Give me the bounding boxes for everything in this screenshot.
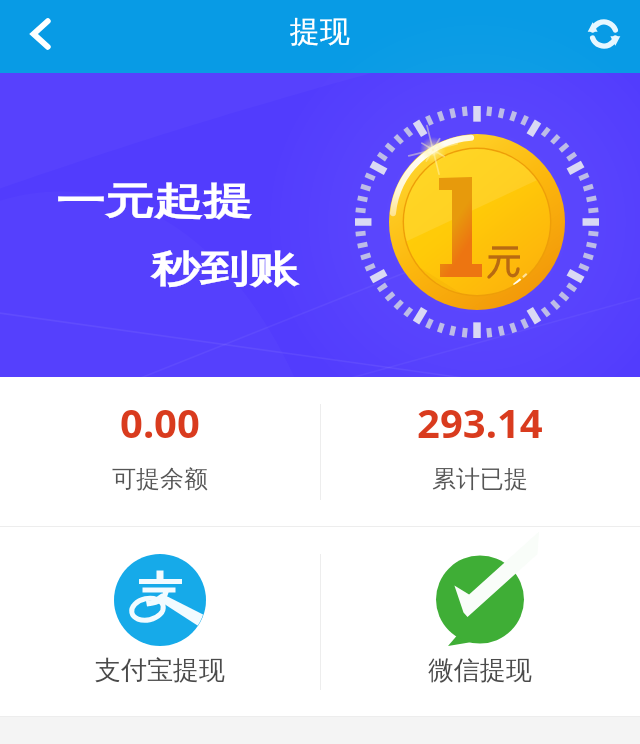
staticText: 0.00 bbox=[120, 395, 200, 449]
button[interactable]: 微信提现 bbox=[320, 527, 640, 716]
staticText: 293.14 bbox=[417, 395, 543, 449]
staticText: 一元起提 bbox=[56, 178, 252, 225]
button[interactable]: 0.00 bbox=[0, 377, 320, 526]
staticText: 秒到账 bbox=[151, 246, 298, 293]
staticText: 累计已提 bbox=[432, 464, 528, 494]
staticText: 可提余额 bbox=[112, 464, 208, 494]
button[interactable]: Refresh bbox=[560, 0, 640, 73]
staticText: 提现 bbox=[290, 13, 350, 51]
staticText: 支付宝提现 bbox=[95, 654, 225, 687]
button[interactable]: 293.14 bbox=[320, 377, 640, 526]
button[interactable]: Back bbox=[0, 0, 86, 73]
staticText: 微信提现 bbox=[428, 654, 532, 687]
button[interactable]: 支付宝提现 bbox=[0, 527, 320, 716]
